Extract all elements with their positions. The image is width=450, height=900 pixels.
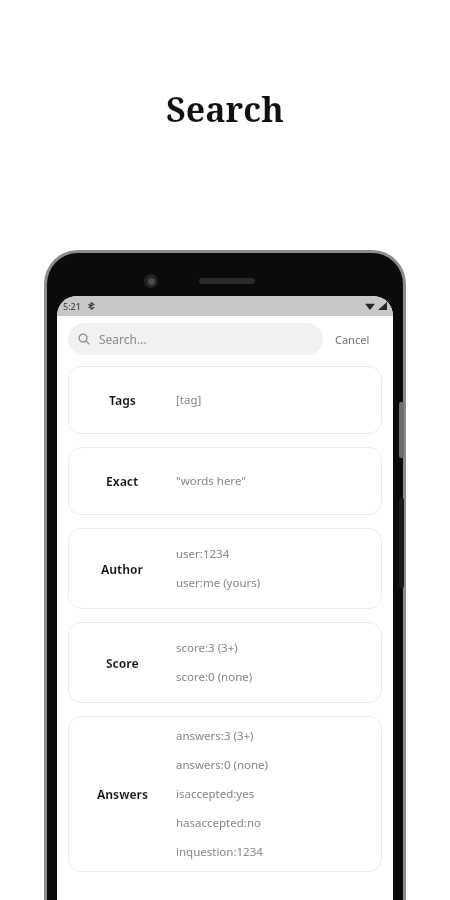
staticText: Score	[106, 655, 139, 671]
staticText: Answers	[97, 786, 148, 802]
staticText: answers:0 (none)	[176, 757, 269, 773]
staticText: user:me (yours)	[176, 575, 261, 591]
button[interactable]: Answers	[68, 716, 382, 872]
staticText: 5:21	[63, 300, 81, 312]
button[interactable]: Tags	[68, 366, 382, 434]
staticText: Search...	[99, 331, 147, 347]
button[interactable]: Score	[68, 622, 382, 703]
staticText: [tag]	[176, 392, 202, 408]
button[interactable]: Cancel	[323, 326, 382, 353]
button[interactable]: Author	[68, 528, 382, 609]
staticText: "words here"	[176, 473, 246, 489]
staticText: answers:3 (3+)	[176, 728, 254, 744]
staticText: score:3 (3+)	[176, 640, 238, 656]
staticText: score:0 (none)	[176, 669, 253, 685]
button[interactable]: Exact	[68, 447, 382, 515]
staticText: user:1234	[176, 546, 230, 562]
staticText: Search	[166, 86, 284, 132]
staticText: isaccepted:yes	[176, 786, 255, 802]
staticText: inquestion:1234	[176, 844, 263, 860]
staticText: Author	[101, 561, 143, 577]
staticText: hasaccepted:no	[176, 815, 261, 831]
staticText: Exact	[106, 473, 139, 489]
staticText: Cancel	[335, 332, 370, 347]
staticText: Tags	[109, 392, 136, 408]
button[interactable]: Search...	[68, 323, 323, 355]
